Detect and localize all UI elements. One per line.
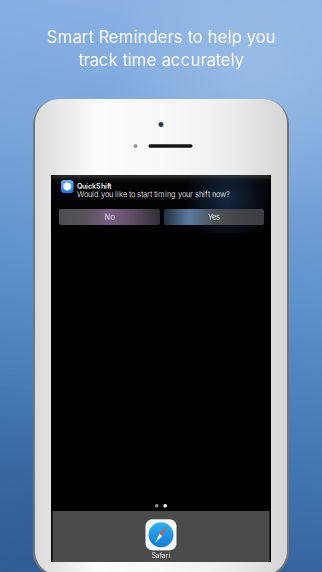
staticText: Smart Reminders to help you — [46, 27, 275, 47]
staticText: QuickShift — [77, 182, 112, 190]
staticText: Safari — [151, 551, 170, 560]
staticText: No — [104, 212, 114, 221]
button[interactable]: No — [59, 209, 160, 225]
button[interactable]: Safari — [145, 519, 176, 560]
button[interactable]: Yes — [164, 209, 264, 225]
staticText: track time accurately — [78, 50, 243, 70]
staticText: Would you like to start timing your shif… — [77, 190, 230, 199]
staticText: Yes — [208, 212, 220, 221]
